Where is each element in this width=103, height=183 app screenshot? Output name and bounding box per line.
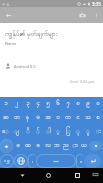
button[interactable]: မ xyxy=(33,111,43,125)
button[interactable]: Enter xyxy=(84,154,101,168)
button[interactable]: Space xyxy=(36,154,76,168)
button[interactable]: း xyxy=(93,125,103,139)
button[interactable]: ၆ xyxy=(53,97,63,111)
button[interactable]: င xyxy=(73,111,83,125)
button[interactable]: တ xyxy=(11,111,22,125)
button[interactable]: စ xyxy=(93,111,103,125)
staticText: ြ xyxy=(66,128,71,136)
button[interactable]: ၄ xyxy=(33,97,43,111)
button[interactable]: More options xyxy=(90,7,103,23)
staticText: ် xyxy=(36,128,40,136)
button[interactable]: ါ xyxy=(43,125,53,139)
staticText: ၅ xyxy=(46,100,50,108)
button[interactable]: Android 6.0 xyxy=(0,63,103,69)
button[interactable]: ့ xyxy=(53,125,63,139)
button[interactable]: ပ xyxy=(53,111,63,125)
button[interactable]: ထ xyxy=(23,139,33,153)
staticText: ဆ xyxy=(3,114,9,122)
button[interactable]: ။ xyxy=(76,154,84,168)
button[interactable]: ေ xyxy=(0,125,11,139)
staticText: ဘ xyxy=(54,142,60,150)
button[interactable]: ၃ xyxy=(22,97,33,111)
staticText: ူ xyxy=(86,128,90,136)
staticText: ၄ xyxy=(36,100,40,108)
button[interactable]: ူ xyxy=(83,125,93,139)
button[interactable]: ၈ xyxy=(73,97,83,111)
button[interactable]: ဘ xyxy=(52,139,61,153)
button[interactable]: ခ xyxy=(33,139,43,153)
staticText: ထ xyxy=(25,142,31,150)
button[interactable]: ည xyxy=(61,139,70,153)
staticText: ။ xyxy=(80,158,82,165)
staticText: 3:35 xyxy=(92,1,101,7)
staticText: ု xyxy=(76,128,80,136)
button[interactable]: ၁၂၃ xyxy=(0,154,14,168)
button[interactable]: ိ xyxy=(22,125,33,139)
staticText: ၊ xyxy=(32,158,33,165)
staticText: ၁ xyxy=(4,100,8,108)
staticText: ့ xyxy=(56,128,60,136)
button[interactable]: Back xyxy=(15,168,30,183)
button[interactable]: ျ xyxy=(11,125,22,139)
button[interactable]: Recents xyxy=(70,168,85,183)
staticText: တ xyxy=(14,114,20,122)
button[interactable]: ် xyxy=(33,125,43,139)
button[interactable]: Shift xyxy=(0,139,13,153)
staticText: Name xyxy=(5,41,17,46)
button[interactable]: က xyxy=(63,111,73,125)
staticText: က xyxy=(65,114,71,122)
button[interactable]: Backspace xyxy=(88,139,103,153)
staticText: န xyxy=(26,114,29,122)
staticText: ါ xyxy=(46,128,51,136)
button[interactable]: ယ xyxy=(79,139,88,153)
staticText: ခ xyxy=(36,142,40,150)
button[interactable]: ာ xyxy=(70,139,79,153)
staticText: ယ xyxy=(81,142,87,150)
staticText: ၀ xyxy=(96,100,100,108)
button[interactable]: ဆ xyxy=(0,111,11,125)
button[interactable]: ြ xyxy=(63,125,73,139)
staticText: Sent 3:34 pm xyxy=(70,79,95,84)
button[interactable]: ၀ xyxy=(93,97,103,111)
button[interactable]: ၂ xyxy=(11,97,22,111)
button[interactable]: ၊ xyxy=(28,154,36,168)
staticText: ျ xyxy=(14,128,19,136)
staticText: ၁၂၃ xyxy=(4,159,10,164)
staticText: ၇ xyxy=(66,100,70,108)
staticText: ၉ xyxy=(86,100,90,108)
button[interactable]: ၉ xyxy=(83,97,93,111)
button[interactable]: သ xyxy=(83,111,93,125)
button[interactable]: လ xyxy=(43,139,52,153)
button[interactable]: Back xyxy=(0,7,16,23)
staticText: ၆ xyxy=(56,100,60,108)
staticText: လ xyxy=(45,142,51,150)
staticText: း xyxy=(96,128,101,136)
button[interactable]: ု xyxy=(73,125,83,139)
staticText: စ xyxy=(96,114,100,122)
button[interactable]: န xyxy=(22,111,33,125)
button[interactable]: ၅ xyxy=(43,97,53,111)
button[interactable]: အ xyxy=(43,111,53,125)
staticText: ည xyxy=(63,142,69,150)
button[interactable]: Home xyxy=(41,168,56,183)
staticText: ိ xyxy=(26,128,30,136)
button[interactable]: ၇ xyxy=(63,97,73,111)
button[interactable]: ဖ xyxy=(13,139,23,153)
button[interactable]: ၁ xyxy=(0,97,11,111)
staticText: ကျွန်ုပ်၏ မှတ်ချက်များ xyxy=(5,29,58,39)
staticText: င xyxy=(76,114,80,122)
staticText: ာ xyxy=(72,142,78,150)
button[interactable]: Change language xyxy=(14,154,28,168)
staticText: မ xyxy=(36,114,40,122)
button[interactable]: Keyboard xyxy=(89,168,102,181)
staticText: အ xyxy=(45,114,51,122)
staticText: ပ xyxy=(56,114,60,122)
staticText: သ xyxy=(85,114,91,122)
staticText: ၃ xyxy=(26,100,30,108)
staticText: ၈ xyxy=(76,100,80,108)
staticText: ဖ xyxy=(16,142,20,150)
staticText: ၂ xyxy=(15,100,18,108)
button[interactable]: Camera xyxy=(74,7,90,23)
staticText: Android 6.0 xyxy=(14,64,36,69)
staticText: ေ xyxy=(2,128,9,136)
